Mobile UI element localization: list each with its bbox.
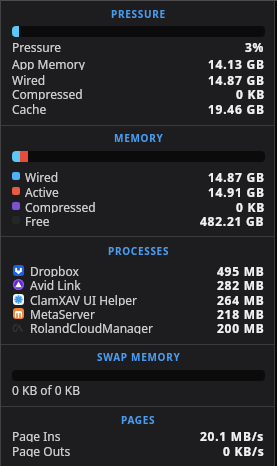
button[interactable]: PROCESSES: [0, 244, 277, 257]
staticText: 495 MB: [217, 263, 265, 277]
staticText: Compressed: [12, 86, 83, 100]
staticText: MEMORY: [114, 131, 164, 144]
button[interactable]: Compressed: [12, 199, 265, 213]
staticText: Free: [25, 213, 50, 227]
staticText: 14.13 GB: [208, 56, 265, 70]
staticText: Page Ins: [12, 428, 61, 442]
button[interactable]: Page Ins: [12, 428, 265, 442]
staticText: Cache: [12, 101, 47, 115]
button[interactable]: ClamXAV UI Helper: [13, 292, 265, 306]
staticText: PAGES: [121, 413, 156, 426]
staticText: 14.87 GB: [208, 72, 265, 86]
staticText: Pressure: [12, 39, 62, 53]
staticText: 0 KB/s: [223, 443, 265, 457]
button[interactable]: Page Outs: [12, 443, 265, 457]
staticText: PROCESSES: [108, 244, 170, 257]
staticText: Compressed: [25, 199, 96, 213]
button[interactable]: Compressed: [12, 86, 265, 100]
staticText: Dropbox: [30, 263, 79, 277]
staticText: Active: [25, 184, 59, 198]
button[interactable]: Avid Link: [13, 277, 265, 291]
button[interactable]: Dropbox: [13, 263, 265, 277]
staticText: 200 MB: [217, 320, 265, 334]
staticText: Avid Link: [30, 277, 81, 291]
staticText: 14.87 GB: [208, 169, 265, 183]
staticText: 264 MB: [217, 292, 265, 306]
button[interactable]: Free: [12, 213, 265, 227]
staticText: 0 KB of 0 KB: [12, 382, 81, 396]
staticText: Wired: [12, 72, 46, 86]
staticText: SWAP MEMORY: [97, 350, 181, 363]
button[interactable]: Cache: [12, 101, 265, 115]
staticText: 19.46 GB: [208, 101, 265, 115]
staticText: Page Outs: [12, 443, 71, 457]
staticText: 482.21 GB: [200, 213, 265, 227]
staticText: 0 KB: [236, 199, 265, 213]
button[interactable]: SWAP MEMORY: [0, 350, 277, 363]
staticText: 0 KB: [236, 86, 265, 100]
staticText: 3%: [245, 39, 265, 53]
staticText: Wired: [25, 169, 59, 183]
button[interactable]: App Memory: [12, 56, 265, 70]
staticText: PRESSURE: [111, 7, 166, 20]
staticText: MetaServer: [30, 306, 95, 320]
staticText: ClamXAV UI Helper: [30, 292, 137, 306]
button[interactable]: Pressure: [12, 39, 265, 53]
button[interactable]: PAGES: [0, 413, 277, 426]
button[interactable]: MetaServer: [13, 306, 265, 320]
staticText: 14.91 GB: [208, 184, 265, 198]
button[interactable]: Wired: [12, 72, 265, 86]
staticText: 218 MB: [217, 306, 265, 320]
button[interactable]: Active: [12, 184, 265, 198]
button[interactable]: MEMORY: [0, 131, 277, 144]
staticText: App Memory: [12, 56, 85, 70]
button[interactable]: Wired: [12, 169, 265, 183]
staticText: 20.1 MB/s: [200, 428, 265, 442]
button[interactable]: 0 KB of 0 KB: [12, 382, 277, 396]
button[interactable]: PRESSURE: [0, 7, 277, 20]
staticText: RolandCloudManager: [30, 320, 153, 334]
button[interactable]: RolandCloudManager: [13, 320, 265, 334]
staticText: 282 MB: [217, 277, 265, 291]
